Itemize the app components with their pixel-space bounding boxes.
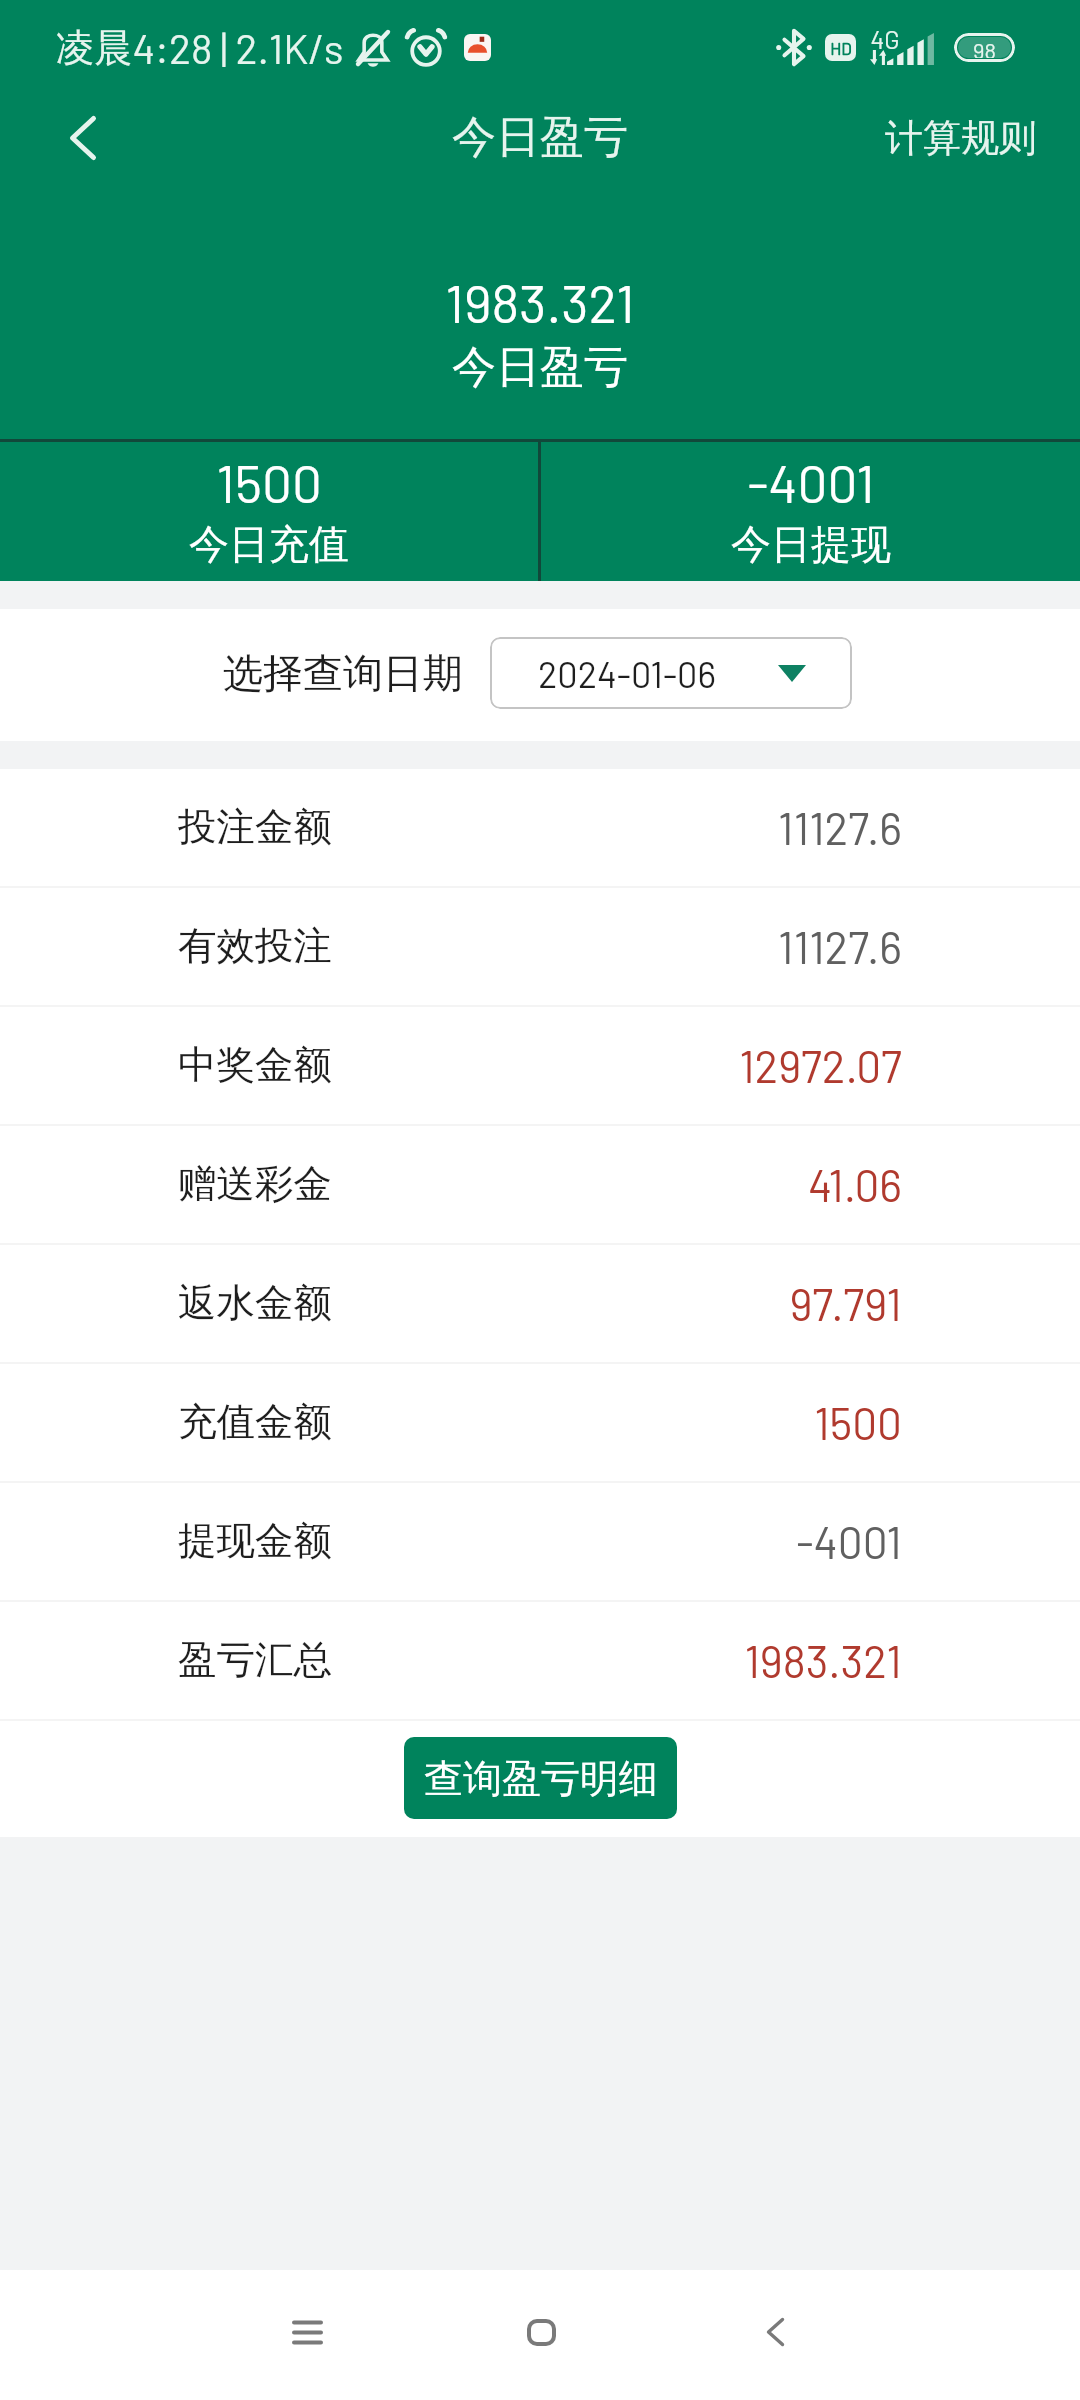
button[interactable]: 充值金额	[0, 1364, 1080, 1481]
button[interactable]: 有效投注	[0, 888, 1080, 1005]
staticText: 赠送彩金	[178, 1160, 332, 1209]
button[interactable]: 盈亏汇总	[0, 1602, 1080, 1719]
button[interactable]: 投注金额	[0, 769, 1080, 886]
staticText: 1983.321	[744, 1634, 902, 1687]
staticText: 今日盈亏	[452, 340, 628, 395]
staticText: 充值金额	[178, 1398, 332, 1447]
staticText: 97.791	[789, 1277, 902, 1330]
button[interactable]: 赠送彩金	[0, 1126, 1080, 1243]
staticText: 提现金额	[178, 1517, 332, 1566]
button[interactable]: Home	[424, 2267, 658, 2397]
button[interactable]: 提现金额	[0, 1483, 1080, 1600]
button[interactable]: Recent apps	[190, 2267, 424, 2397]
button[interactable]: 2024-01-06	[490, 637, 852, 709]
button[interactable]: 中奖金额	[0, 1007, 1080, 1124]
staticText: 11127.6	[778, 920, 902, 973]
staticText: 今日提现	[731, 519, 891, 569]
button[interactable]: 计算规则	[844, 90, 1080, 185]
staticText: 4G	[870, 24, 900, 54]
staticText: 1500	[814, 1396, 902, 1449]
staticText: 计算规则	[885, 114, 1037, 162]
staticText: 有效投注	[178, 922, 332, 971]
button[interactable]: Back	[0, 90, 150, 185]
staticText: 1500	[216, 450, 322, 514]
staticText: 41.06	[808, 1158, 902, 1211]
button[interactable]: 返水金额	[0, 1245, 1080, 1362]
staticText: 11127.6	[778, 801, 902, 854]
button[interactable]: 查询盈亏明细	[404, 1737, 677, 1819]
staticText: 查询盈亏明细	[424, 1754, 658, 1803]
staticText: 中奖金额	[178, 1041, 332, 1090]
staticText: 凌晨	[56, 24, 132, 72]
staticText: 4:28 | 2.1K/s	[132, 23, 344, 72]
button[interactable]: Back	[658, 2267, 892, 2397]
staticText: 今日盈亏	[452, 110, 628, 165]
staticText: HD	[830, 38, 852, 58]
staticText: 返水金额	[178, 1279, 332, 1328]
staticText: -4001	[747, 450, 875, 514]
staticText: 今日充值	[189, 519, 349, 569]
staticText: 选择查询日期	[223, 648, 463, 698]
staticText: 盈亏汇总	[178, 1636, 332, 1685]
staticText: 98	[973, 37, 996, 58]
staticText: 1983.321	[445, 270, 635, 334]
staticText: -4001	[796, 1515, 902, 1568]
staticText: 投注金额	[178, 803, 332, 852]
staticText: 2024-01-06	[538, 652, 716, 695]
staticText: 12972.07	[739, 1039, 902, 1092]
